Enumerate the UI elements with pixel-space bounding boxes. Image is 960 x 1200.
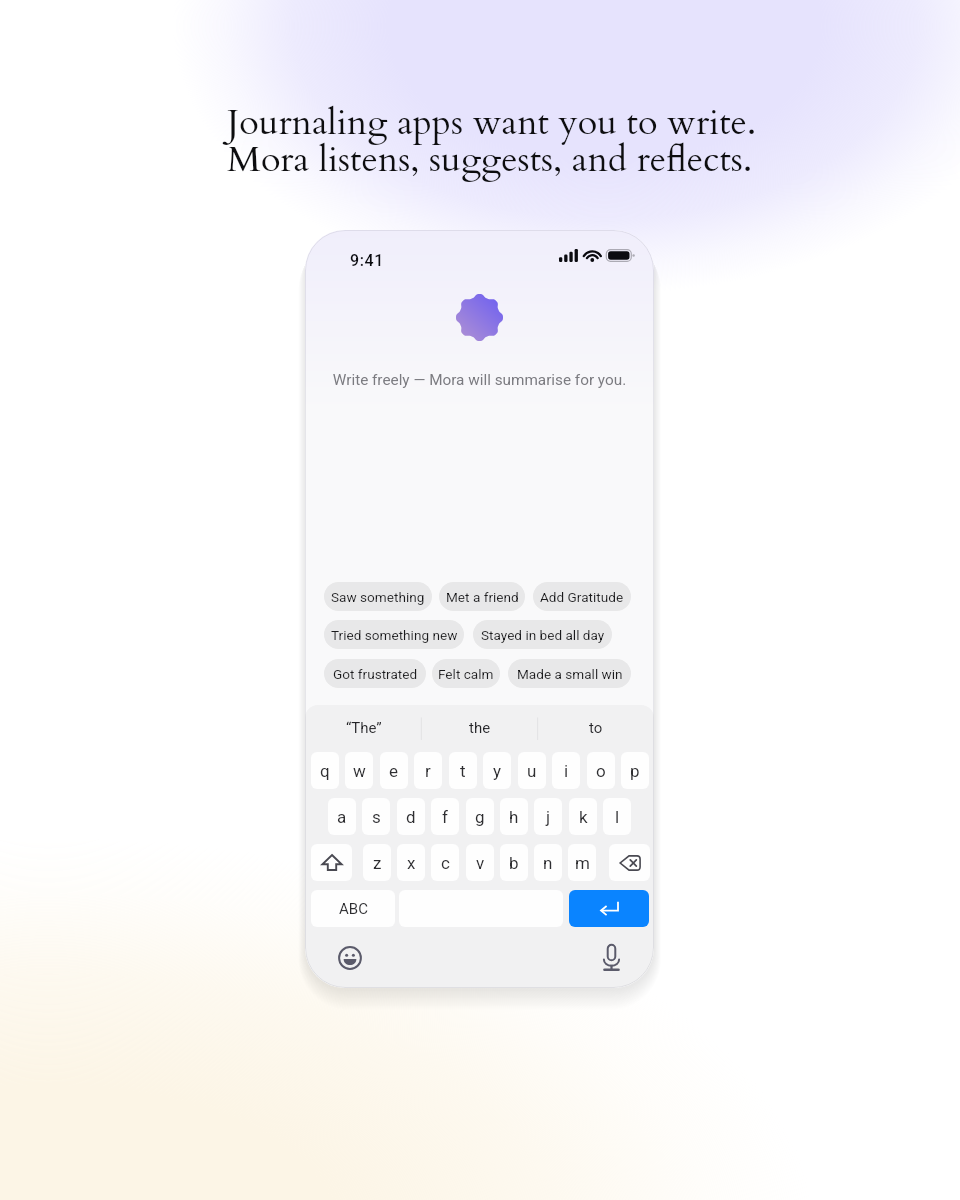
staticText: Stayed in bed all day bbox=[481, 627, 605, 643]
button[interactable]: s bbox=[362, 798, 390, 835]
button[interactable]: j bbox=[534, 798, 562, 835]
button[interactable]: Emoji bbox=[337, 945, 363, 971]
staticText: b bbox=[509, 853, 519, 873]
staticText: v bbox=[476, 853, 485, 873]
button[interactable]: Felt calm bbox=[432, 659, 500, 688]
button[interactable]: o bbox=[587, 752, 615, 789]
staticText: Made a small win bbox=[517, 666, 623, 682]
staticText: o bbox=[596, 761, 606, 781]
button[interactable]: g bbox=[466, 798, 494, 835]
button[interactable]: Tried something new bbox=[324, 620, 464, 649]
button[interactable]: y bbox=[483, 752, 511, 789]
staticText: y bbox=[493, 761, 502, 781]
button[interactable]: c bbox=[431, 844, 459, 881]
button[interactable]: “The” bbox=[305, 705, 422, 751]
staticText: r bbox=[425, 761, 431, 781]
button[interactable]: q bbox=[311, 752, 339, 789]
staticText: n bbox=[543, 853, 553, 873]
button[interactable]: x bbox=[397, 844, 425, 881]
staticText: d bbox=[406, 807, 416, 827]
staticText: p bbox=[630, 761, 640, 781]
staticText: c bbox=[441, 853, 450, 873]
button[interactable]: Got frustrated bbox=[324, 659, 426, 688]
button[interactable]: ABC bbox=[311, 890, 395, 927]
staticText: z bbox=[373, 853, 382, 873]
button[interactable]: w bbox=[345, 752, 373, 789]
staticText: j bbox=[546, 807, 551, 827]
button[interactable]: Saw something bbox=[324, 582, 432, 611]
button[interactable]: i bbox=[552, 752, 580, 789]
button[interactable]: Met a friend bbox=[439, 582, 525, 611]
button[interactable]: l bbox=[603, 798, 631, 835]
staticText: w bbox=[353, 761, 366, 781]
staticText: s bbox=[372, 807, 381, 827]
staticText: 9:41 bbox=[350, 251, 384, 270]
staticText: Tried something new bbox=[331, 627, 458, 643]
button[interactable]: r bbox=[414, 752, 442, 789]
button[interactable]: z bbox=[363, 844, 391, 881]
button[interactable]: the bbox=[422, 705, 538, 751]
staticText: h bbox=[509, 807, 519, 827]
staticText: Saw something bbox=[331, 589, 425, 605]
staticText: Got frustrated bbox=[333, 666, 418, 682]
staticText: g bbox=[475, 807, 485, 827]
button[interactable]: b bbox=[500, 844, 528, 881]
button[interactable]: Stayed in bed all day bbox=[473, 620, 612, 649]
staticText: x bbox=[407, 853, 416, 873]
staticText: f bbox=[442, 807, 448, 827]
button[interactable]: to bbox=[538, 705, 654, 751]
button[interactable]: m bbox=[568, 844, 596, 881]
staticText: Felt calm bbox=[438, 666, 494, 682]
button[interactable]: u bbox=[518, 752, 546, 789]
staticText: q bbox=[320, 761, 330, 781]
button[interactable]: p bbox=[621, 752, 649, 789]
staticText: i bbox=[564, 761, 569, 781]
button[interactable]: v bbox=[466, 844, 494, 881]
button[interactable]: e bbox=[380, 752, 408, 789]
staticText: ABC bbox=[339, 900, 368, 918]
button[interactable]: Dictate bbox=[598, 944, 624, 972]
staticText: l bbox=[615, 807, 620, 827]
button[interactable]: k bbox=[569, 798, 597, 835]
staticText: the bbox=[469, 719, 491, 737]
staticText: Add Gratitude bbox=[540, 589, 624, 605]
button[interactable]: Shift bbox=[311, 844, 352, 881]
staticText: to bbox=[589, 719, 603, 737]
button[interactable]: Add Gratitude bbox=[533, 582, 631, 611]
button[interactable]: f bbox=[431, 798, 459, 835]
button[interactable]: n bbox=[534, 844, 562, 881]
staticText: Journaling apps want you to write. Mora … bbox=[227, 98, 757, 184]
button[interactable]: a bbox=[328, 798, 356, 835]
staticText: Met a friend bbox=[446, 589, 519, 605]
button[interactable]: Made a small win bbox=[508, 659, 631, 688]
staticText: Write freely — Mora will summarise for y… bbox=[305, 371, 654, 389]
button[interactable]: d bbox=[397, 798, 425, 835]
button[interactable]: Backspace bbox=[609, 844, 650, 881]
staticText: u bbox=[527, 761, 537, 781]
staticText: “The” bbox=[346, 719, 382, 737]
button[interactable]: h bbox=[500, 798, 528, 835]
staticText: m bbox=[575, 853, 590, 873]
button[interactable]: Return bbox=[569, 890, 649, 927]
button[interactable]: t bbox=[449, 752, 477, 789]
staticText: a bbox=[337, 807, 347, 827]
staticText: t bbox=[460, 761, 466, 781]
staticText: k bbox=[579, 807, 588, 827]
staticText: e bbox=[389, 761, 399, 781]
